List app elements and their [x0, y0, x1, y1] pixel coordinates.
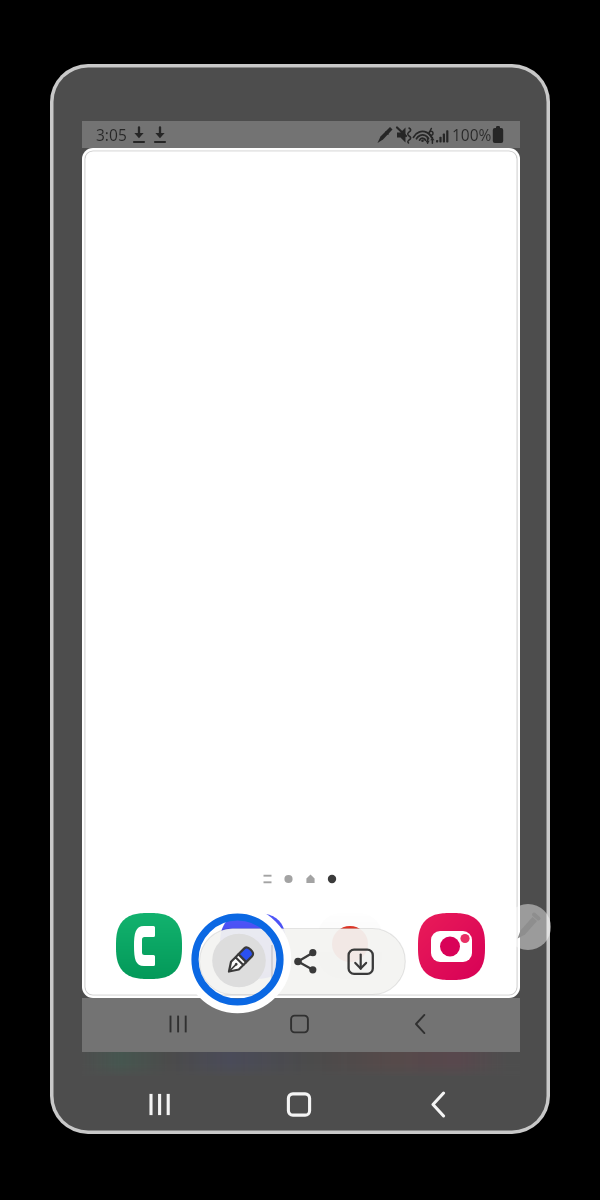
button[interactable]: Camera [417, 914, 483, 980]
button[interactable]: Edit [505, 904, 551, 950]
staticText: 3:05 [96, 124, 127, 145]
button[interactable]: Phone [116, 914, 182, 980]
button[interactable]: Back [400, 1000, 480, 1044]
button[interactable]: Share [285, 938, 330, 983]
button[interactable]: Go back [397, 1083, 477, 1129]
button[interactable]: Save [339, 938, 384, 983]
button[interactable]: Draw [212, 932, 268, 988]
button[interactable]: Recents [120, 1000, 200, 1044]
staticText: 100% [452, 124, 492, 145]
button[interactable]: Home screen [259, 1083, 339, 1129]
button[interactable]: Recent apps [120, 1083, 200, 1129]
button[interactable]: Home [261, 1000, 341, 1044]
